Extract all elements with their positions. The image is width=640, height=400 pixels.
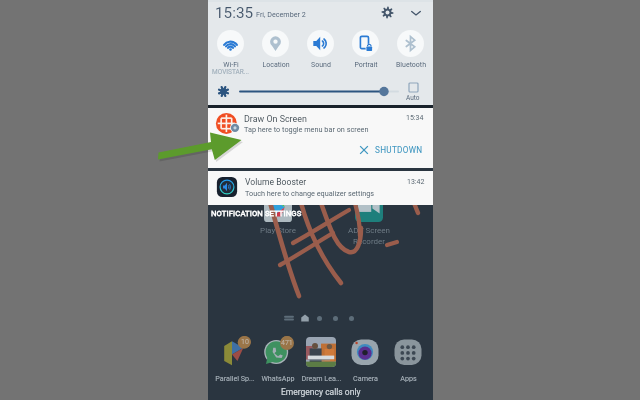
staticText: NOTIFICATION SETTINGS [211,209,302,218]
button[interactable]: Camera [341,337,389,382]
button[interactable]: Portrait [343,30,388,69]
button[interactable]: SHUTDOWN [359,145,423,155]
staticText: 15:35 [215,4,254,22]
staticText: Sound [311,61,331,69]
staticText: Tap here to toggle menu bar on screen [244,125,369,134]
staticText: 10 [241,338,249,346]
staticText: Camera [353,374,378,382]
button[interactable]: Auto brightness [402,82,424,102]
button[interactable]: Wi-Fi [208,30,253,77]
staticText: Location [262,61,290,69]
button[interactable]: Bluetooth [388,30,433,69]
button[interactable]: Sound [298,30,343,69]
staticText: Dream Lea... [301,374,342,382]
staticText: 13:42 [407,178,425,186]
staticText: MOVISTAR... [212,68,249,76]
staticText: Apps [400,374,417,382]
staticText: Bluetooth [396,61,426,69]
staticText: Touch here to change equalizer settings [245,189,375,198]
staticText: Play Store [253,226,303,235]
staticText: Emergency calls only [281,387,361,397]
button[interactable]: 10 [211,337,259,382]
staticText: Auto [406,94,420,102]
staticText: Wi-Fi [223,61,239,69]
staticText: Draw On Screen [244,114,307,124]
staticText: 15:34 [406,114,424,122]
button[interactable]: Dream Lea... [297,337,345,382]
button[interactable]: Draw On Screen [208,108,433,168]
button[interactable]: Volume Booster [208,171,433,205]
staticText: Volume Booster [245,177,307,187]
button[interactable]: Location [253,30,298,69]
staticText: WhatsApp [261,374,295,382]
button[interactable]: Settings [375,0,399,24]
staticText: Fri, December 2 [256,10,306,18]
staticText: ADV Screen Recorder [344,226,394,246]
button[interactable]: 471 [254,337,302,382]
button[interactable]: Apps [384,337,432,382]
button[interactable]: NOTIFICATION SETTINGS [208,205,433,219]
staticText: 471 [281,339,293,347]
button[interactable]: Collapse panel [404,1,428,25]
staticText: Parallel Sp... [215,374,255,382]
staticText: SHUTDOWN [375,145,423,155]
staticText: Portrait [354,61,378,69]
